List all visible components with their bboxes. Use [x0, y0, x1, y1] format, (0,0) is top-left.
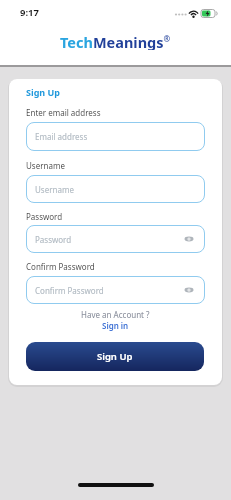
staticText: Sign Up — [26, 86, 61, 98]
staticText: Username — [26, 160, 65, 171]
staticText: TechMeanings® — [60, 32, 171, 50]
staticText: Password — [26, 211, 63, 222]
button[interactable]: Confirm Password — [26, 276, 205, 304]
staticText: Sign in — [102, 320, 129, 331]
staticText: Confirm Password — [26, 261, 95, 272]
staticText: Have an Account ? — [81, 309, 150, 320]
button[interactable]: Sign in — [9, 319, 222, 331]
button[interactable]: Sign Up — [26, 342, 204, 371]
staticText: Sign Up — [97, 350, 133, 363]
button[interactable]: Password — [26, 225, 205, 253]
button[interactable]: Username — [26, 175, 205, 203]
staticText: Confirm Password — [35, 285, 104, 296]
button[interactable]: Email address — [26, 122, 205, 151]
staticText: Enter email address — [26, 107, 101, 118]
staticText: Email address — [35, 131, 88, 142]
staticText: Password — [35, 234, 72, 245]
staticText: 9:17 — [20, 6, 39, 18]
staticText: Username — [35, 184, 74, 195]
